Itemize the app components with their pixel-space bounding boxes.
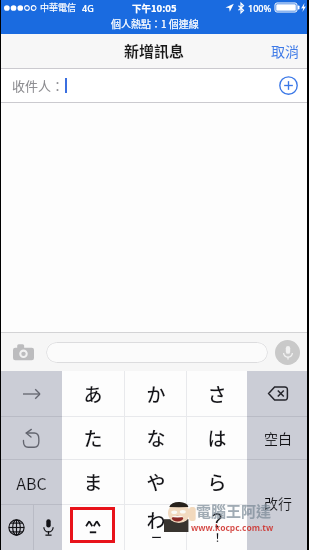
staticText: 中華電信 bbox=[40, 1, 77, 14]
button[interactable]: 改行 bbox=[247, 457, 309, 548]
staticText: あ bbox=[83, 380, 103, 408]
button[interactable]: Voice message bbox=[275, 340, 300, 365]
button[interactable]: 取消 bbox=[261, 35, 309, 67]
staticText: 取消 bbox=[271, 41, 299, 61]
button[interactable]: Undo bbox=[0, 417, 62, 459]
button[interactable]: は bbox=[187, 417, 247, 459]
staticText: わ bbox=[146, 506, 166, 534]
staticText: 改行 bbox=[264, 493, 292, 513]
staticText: 100% bbox=[248, 2, 272, 14]
staticText: か bbox=[146, 380, 166, 408]
button[interactable]: ら bbox=[187, 460, 247, 504]
button[interactable]: ま bbox=[62, 460, 124, 504]
button[interactable]: わ bbox=[125, 505, 186, 550]
button[interactable]: Switch keyboard bbox=[0, 505, 33, 550]
button[interactable]: Camera bbox=[13, 344, 34, 361]
staticText: 新增訊息 bbox=[124, 40, 185, 62]
staticText: 4G bbox=[82, 2, 94, 14]
staticText: な bbox=[146, 424, 166, 452]
staticText: ？ bbox=[207, 506, 227, 534]
button[interactable]: ABC bbox=[0, 460, 62, 504]
button[interactable]: Add contact bbox=[279, 76, 298, 95]
staticText: は bbox=[207, 424, 227, 452]
staticText: ABC bbox=[16, 471, 47, 494]
staticText: 收件人： bbox=[12, 76, 65, 95]
staticText: た bbox=[83, 424, 103, 452]
staticText: www.kocpc.com.tw bbox=[191, 522, 274, 534]
staticText: 個人熱點：1 個連線 bbox=[111, 16, 199, 30]
button[interactable]: な bbox=[125, 417, 186, 459]
staticText: ま bbox=[83, 468, 103, 496]
button[interactable]: 空白 bbox=[247, 417, 309, 459]
staticText: ら bbox=[207, 468, 227, 496]
button[interactable]: Delete bbox=[247, 371, 309, 416]
button[interactable]: Emoticons bbox=[62, 505, 124, 550]
button[interactable]: Dictation bbox=[34, 505, 62, 550]
button[interactable]: た bbox=[62, 417, 124, 459]
staticText: 下午10:05 bbox=[132, 1, 177, 15]
button[interactable]: Next bbox=[0, 371, 62, 416]
staticText: ！ bbox=[212, 529, 223, 545]
button[interactable]: か bbox=[125, 371, 186, 416]
staticText: 空白 bbox=[264, 428, 292, 448]
staticText: 電腦王阿達 bbox=[196, 500, 272, 522]
button[interactable]: や bbox=[125, 460, 186, 504]
staticText: ー bbox=[151, 529, 162, 545]
button[interactable]: あ bbox=[62, 371, 124, 416]
staticText: や bbox=[146, 468, 166, 496]
button[interactable]: ？ bbox=[187, 505, 247, 550]
button[interactable]: Message text field bbox=[46, 342, 268, 363]
button[interactable]: さ bbox=[187, 371, 247, 416]
staticText: さ bbox=[207, 380, 227, 408]
